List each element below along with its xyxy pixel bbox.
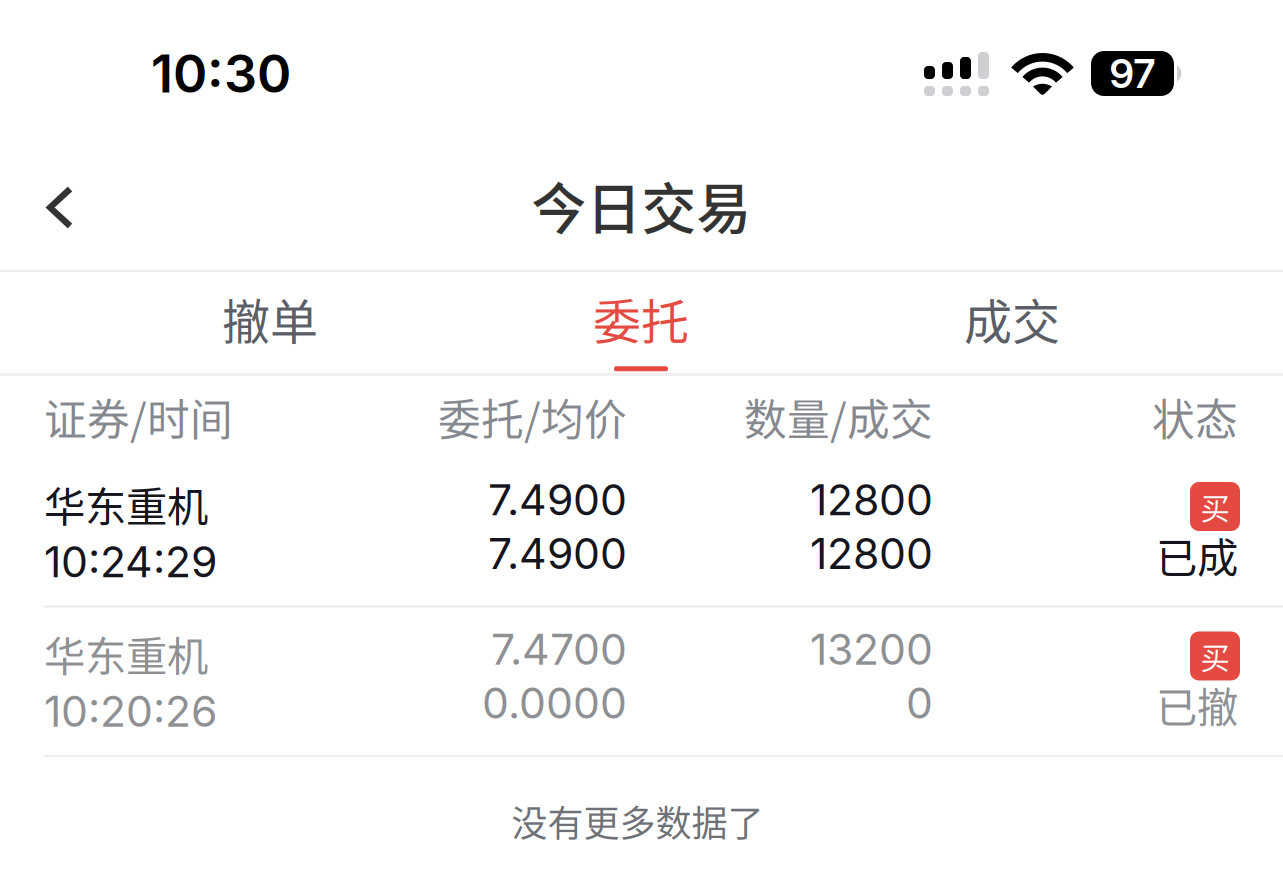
staticText: 没有更多数据了 [511, 795, 763, 847]
staticText: 华东重机 [44, 623, 208, 683]
staticText: 0.0000 [482, 677, 627, 729]
staticText: 买 [1200, 485, 1229, 528]
staticText: 7.4900 [488, 474, 627, 526]
staticText: 10:24:29 [44, 536, 217, 587]
staticText: 状态 [1152, 386, 1238, 448]
staticText: 成交 [964, 284, 1060, 353]
staticText: 委托 [593, 284, 689, 353]
staticText: 今日交易 [531, 165, 751, 245]
staticText: 12800 [810, 474, 933, 526]
staticText: 撤单 [222, 284, 318, 353]
staticText: 10:30 [151, 42, 291, 105]
button[interactable]: 华东重机 [0, 607, 1283, 755]
button[interactable]: Back [0, 160, 99, 250]
staticText: 10:20:26 [44, 685, 217, 737]
button[interactable]: 华东重机 [0, 458, 1283, 605]
staticText: 12800 [810, 528, 933, 579]
staticText: 买 [1200, 635, 1229, 677]
staticText: 已成 [1156, 525, 1238, 585]
button[interactable]: 撤单 [90, 272, 450, 373]
staticText: 7.4900 [488, 528, 627, 579]
staticText: 华东重机 [44, 474, 208, 534]
staticText: 7.4700 [491, 623, 627, 675]
staticText: 97 [1109, 49, 1155, 98]
button[interactable]: 委托 [461, 272, 821, 373]
staticText: 委托/均价 [438, 386, 627, 448]
staticText: 证券/时间 [44, 386, 233, 448]
staticText: 0 [906, 677, 933, 729]
staticText: 数量/成交 [744, 386, 933, 448]
staticText: 13200 [810, 623, 933, 675]
button[interactable]: 成交 [832, 272, 1192, 373]
staticText: 已撤 [1156, 674, 1238, 734]
